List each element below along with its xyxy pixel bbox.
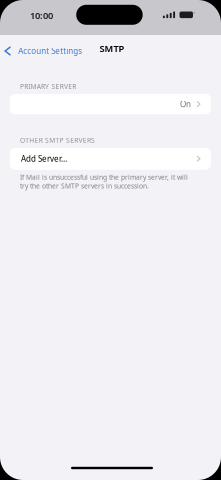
staticText: SMTP <box>99 42 124 55</box>
staticText: On <box>180 99 191 109</box>
staticText: Add Server… <box>21 153 67 164</box>
button[interactable]: Account Settings <box>0 40 86 62</box>
staticText: Account Settings <box>18 46 82 56</box>
staticText: 10:00 <box>30 9 53 22</box>
staticText: OTHER SMTP SERVERS <box>20 136 95 145</box>
button[interactable]: On <box>10 94 211 114</box>
button[interactable]: Add Server… <box>10 148 211 170</box>
staticText: If Mail is unsuccessful using the primar… <box>20 173 188 190</box>
staticText: PRIMARY SERVER <box>20 82 76 91</box>
